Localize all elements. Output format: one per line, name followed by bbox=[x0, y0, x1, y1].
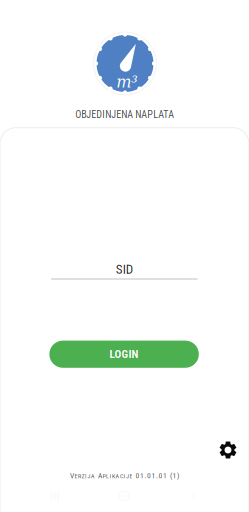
staticText: m³ bbox=[116, 73, 137, 91]
staticText: LOGIN bbox=[110, 348, 139, 361]
staticText: SID bbox=[116, 262, 133, 277]
button[interactable]: LOGIN bbox=[49, 341, 199, 368]
staticText: OBJEDINJENA NAPLATA bbox=[75, 109, 174, 120]
staticText: VERZIJA APLIKACIJE 01.01.01 (1) bbox=[67, 471, 181, 480]
button[interactable]: Settings bbox=[214, 436, 242, 464]
